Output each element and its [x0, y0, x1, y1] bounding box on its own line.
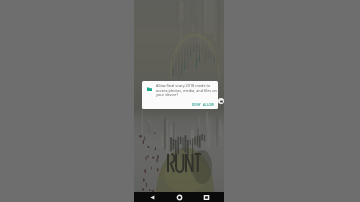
button[interactable]: DENY — [191, 102, 202, 108]
button[interactable]: Recents — [201, 192, 211, 202]
button[interactable]: ALLOW — [202, 102, 216, 108]
staticText: Allow final scary 2018 mode to access ph… — [156, 83, 218, 97]
button[interactable]: Back — [147, 192, 157, 202]
button[interactable]: Home — [174, 192, 184, 202]
button[interactable]: Screen recorder — [218, 98, 224, 104]
